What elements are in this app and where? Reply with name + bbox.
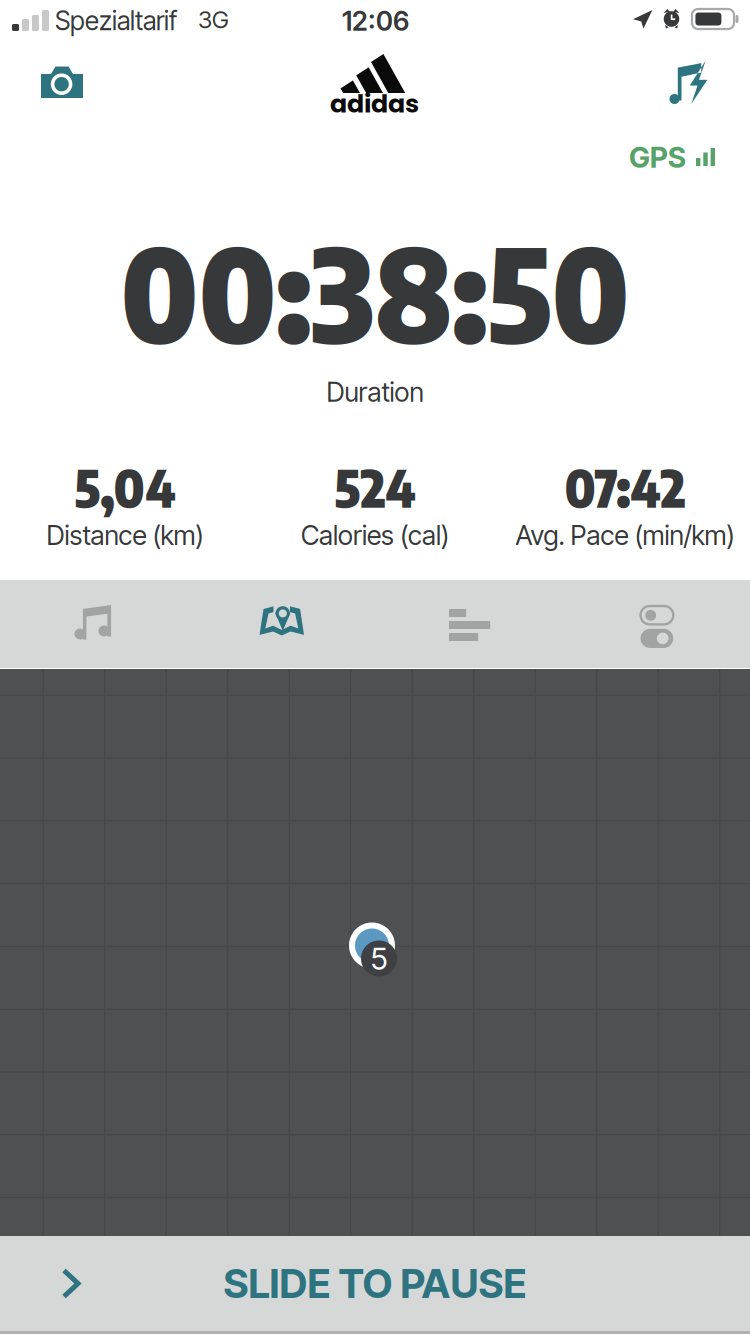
staticText: 07:42	[564, 455, 685, 519]
staticText: Calories (cal)	[301, 519, 449, 551]
staticText: Avg. Pace (min/km)	[515, 519, 734, 551]
button[interactable]: Map	[188, 573, 376, 661]
button[interactable]: Camera	[21, 46, 103, 118]
staticText: GPS	[629, 140, 686, 175]
staticText: Spezialtarif	[55, 5, 177, 36]
button[interactable]: Statistics	[376, 581, 564, 669]
button[interactable]: SLIDE TO PAUSE	[0, 1236, 750, 1331]
staticText: 5,04	[74, 455, 175, 519]
staticText: 00:38:50	[120, 212, 629, 372]
staticText: Distance (km)	[46, 519, 203, 551]
staticText: Duration	[326, 376, 423, 408]
button[interactable]: Music	[0, 575, 187, 663]
staticText: 12:06	[342, 5, 409, 37]
button[interactable]: Settings	[563, 583, 750, 671]
staticText: 524	[334, 455, 415, 519]
staticText: SLIDE TO PAUSE	[223, 1259, 526, 1308]
staticText: 3G	[198, 5, 229, 34]
staticText: 5	[370, 940, 387, 977]
staticText: adidas	[330, 86, 419, 121]
button[interactable]: Music and power saving	[652, 47, 724, 117]
